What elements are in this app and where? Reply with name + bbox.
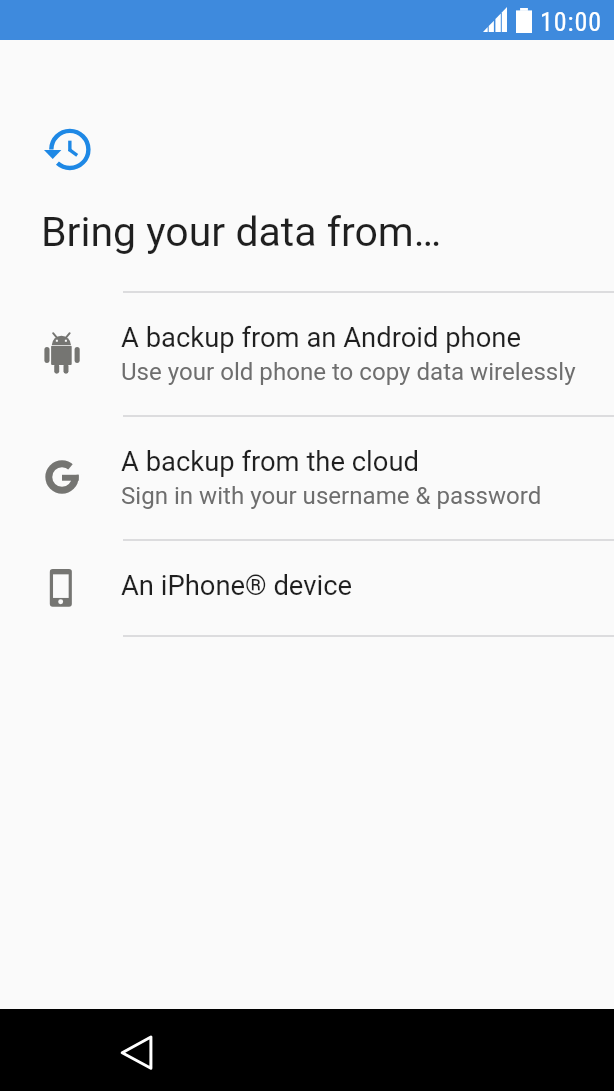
other: Restore (43, 126, 91, 174)
staticText: Use your old phone to copy data wireless… (121, 358, 576, 386)
button[interactable]: A backup from the cloud (0, 417, 614, 539)
staticText: A backup from an Android phone (121, 322, 521, 354)
staticText: 10:00 (540, 7, 602, 37)
button[interactable]: An iPhone® device (0, 541, 614, 635)
staticText: Bring your data from… (41, 208, 442, 256)
button[interactable]: Back (112, 1028, 160, 1076)
staticText: A backup from the cloud (121, 446, 419, 478)
button[interactable]: A backup from an Android phone (0, 293, 614, 415)
staticText: Sign in with your username & password (121, 482, 542, 510)
staticText: An iPhone® device (121, 570, 353, 602)
